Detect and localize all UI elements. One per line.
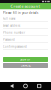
button[interactable]: Recent apps [37,84,41,88]
button[interactable]: Back [10,84,13,88]
staticText: Email address [3,24,20,27]
staticText: SIGN UP [20,58,31,61]
staticText: Full name [3,17,16,20]
button[interactable]: CANCEL [3,63,48,68]
staticText: Please fill in your details [3,11,38,15]
button[interactable]: SIGN UP [3,57,48,62]
button[interactable]: Home [24,84,27,88]
staticText: Password [3,38,15,41]
staticText: Create account [10,4,40,9]
staticText: Phone number [3,31,25,34]
staticText: CANCEL [20,64,30,67]
staticText: Confirm password [3,45,27,48]
